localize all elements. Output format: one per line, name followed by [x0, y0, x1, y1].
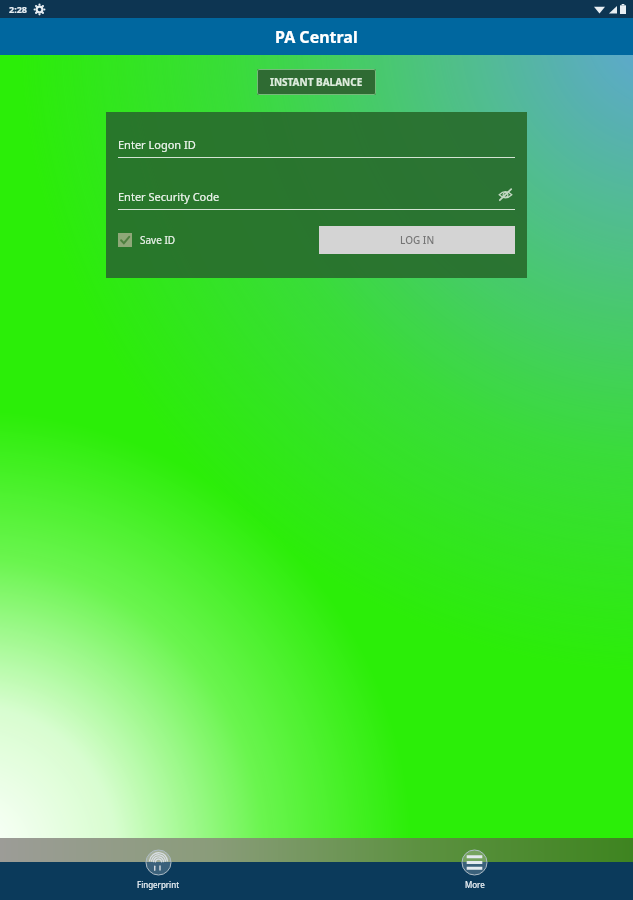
staticText: Enter Logon ID	[118, 137, 515, 152]
other: More	[462, 850, 487, 875]
staticText: Save ID	[140, 233, 176, 247]
button[interactable]: INSTANT BALANCE	[257, 69, 376, 95]
other: Fingerprint	[146, 850, 171, 875]
staticText: LOG IN	[400, 233, 435, 247]
staticText: PA Central	[275, 26, 358, 48]
button[interactable]: Fingerprint	[0, 838, 316, 900]
button[interactable]: More	[316, 838, 633, 900]
staticText: More	[465, 879, 485, 890]
staticText: Enter Security Code	[118, 189, 495, 204]
staticText: Fingerprint	[137, 879, 180, 890]
button[interactable]: LOG IN	[319, 226, 515, 254]
staticText: INSTANT BALANCE	[270, 75, 363, 89]
button[interactable]: Show password	[495, 184, 515, 204]
button[interactable]: Save ID	[118, 230, 176, 250]
staticText: 2:28	[9, 3, 27, 15]
